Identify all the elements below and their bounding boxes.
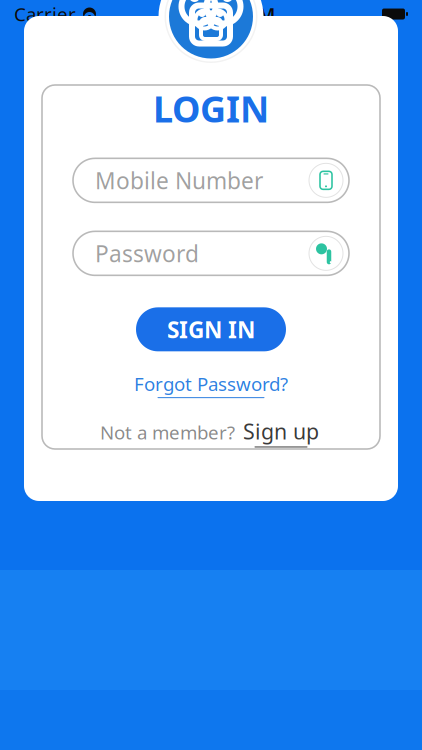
staticText: Sign up — [243, 417, 319, 445]
button[interactable]: SIGN IN — [136, 307, 286, 351]
staticText: Not a member? — [100, 420, 235, 445]
staticText: Forgot Password? — [134, 371, 288, 396]
staticText: SIGN IN — [167, 314, 255, 344]
button[interactable]: Mobile Number — [73, 158, 349, 202]
staticText: Password — [95, 238, 199, 268]
staticText: LOGIN — [153, 84, 269, 132]
button[interactable]: Forgot Password? — [126, 368, 296, 401]
staticText: Carrier — [14, 2, 76, 26]
staticText: Mobile Number — [95, 165, 263, 195]
button[interactable]: Password — [73, 231, 349, 275]
staticText: 5:22 PM — [204, 2, 275, 26]
button[interactable]: Sign up — [240, 415, 322, 449]
